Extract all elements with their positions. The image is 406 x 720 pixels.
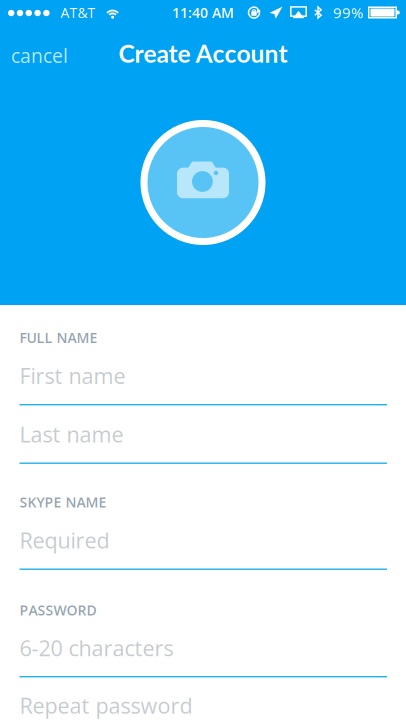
staticText: Last name: [19, 419, 123, 449]
staticText: Create Account: [118, 38, 287, 68]
button[interactable]: Add profile photo: [140, 120, 265, 245]
staticText: 99%: [333, 2, 363, 23]
staticText: cancel: [11, 42, 68, 69]
staticText: FULL NAME: [19, 328, 97, 347]
staticText: Repeat password: [19, 691, 192, 720]
staticText: AT&T: [61, 3, 96, 22]
staticText: 6-20 characters: [19, 633, 173, 663]
button[interactable]: cancel: [0, 38, 80, 69]
staticText: First name: [19, 361, 125, 390]
staticText: PASSWORD: [19, 601, 96, 620]
staticText: 11:40 AM: [172, 3, 234, 22]
staticText: SKYPE NAME: [19, 492, 106, 512]
staticText: Required: [19, 525, 109, 555]
